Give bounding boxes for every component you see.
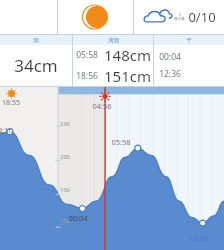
staticText: 降水量: [174, 17, 185, 21]
button[interactable]: 潮: [0, 35, 72, 86]
staticText: 05:58: [111, 137, 131, 147]
staticText: 12:36: [188, 233, 208, 243]
staticText: 12:36: [159, 68, 181, 80]
staticText: 干: [186, 37, 192, 44]
staticText: 250: [60, 120, 70, 127]
staticText: 00:04: [159, 51, 181, 63]
button[interactable]: 云: [134, 0, 224, 34]
staticText: 潮: [33, 37, 39, 44]
staticText: 200: [60, 153, 70, 160]
button[interactable]: 满潮: [73, 35, 153, 86]
staticText: 34cm: [14, 54, 58, 77]
staticText: 150: [60, 186, 70, 193]
staticText: 满潮: [108, 37, 119, 44]
staticText: 3:10: [0, 125, 13, 135]
staticText: 05:58: [76, 49, 98, 61]
button[interactable]: 干: [154, 35, 224, 86]
button[interactable]: 18:55: [0, 87, 224, 250]
staticText: 18:55: [2, 98, 20, 108]
staticText: 100: [60, 217, 70, 224]
staticText: 18:56: [76, 70, 98, 82]
staticText: 151cm: [104, 66, 151, 86]
staticText: 00:04: [68, 213, 88, 223]
staticText: 148cm: [104, 45, 151, 65]
staticText: 04:56: [92, 101, 112, 111]
staticText: 0/10: [188, 8, 216, 26]
staticText: 云: [178, 13, 182, 17]
button[interactable]: Moon phase: [58, 0, 133, 34]
